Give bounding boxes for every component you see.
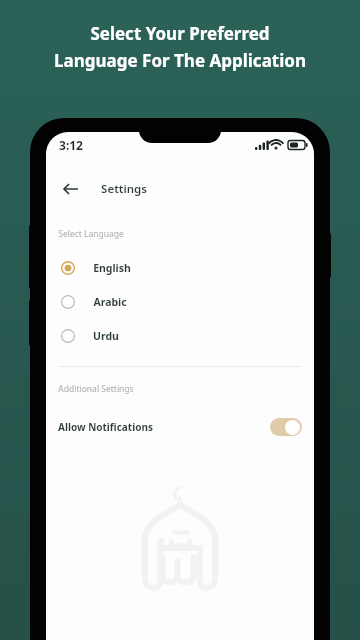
staticText: English [93, 261, 131, 275]
staticText: 3:12 [59, 137, 83, 153]
staticText: Allow Notifications [58, 420, 153, 434]
staticText: Settings [101, 181, 147, 197]
staticText: Select Language [58, 228, 124, 240]
button[interactable]: Back [58, 176, 84, 202]
button[interactable]: Allow Notifications toggle [270, 418, 302, 436]
staticText: Urdu [93, 329, 119, 343]
button[interactable]: English [46, 251, 314, 285]
button[interactable]: Urdu [46, 319, 314, 353]
staticText: Additional Settings [58, 383, 134, 395]
staticText: Language For The Application [54, 49, 306, 72]
staticText: Arabic [93, 295, 127, 309]
button[interactable]: Arabic [46, 285, 314, 319]
button[interactable]: Allow Notifications [46, 412, 314, 442]
staticText: Select Your Preferred [90, 22, 270, 45]
